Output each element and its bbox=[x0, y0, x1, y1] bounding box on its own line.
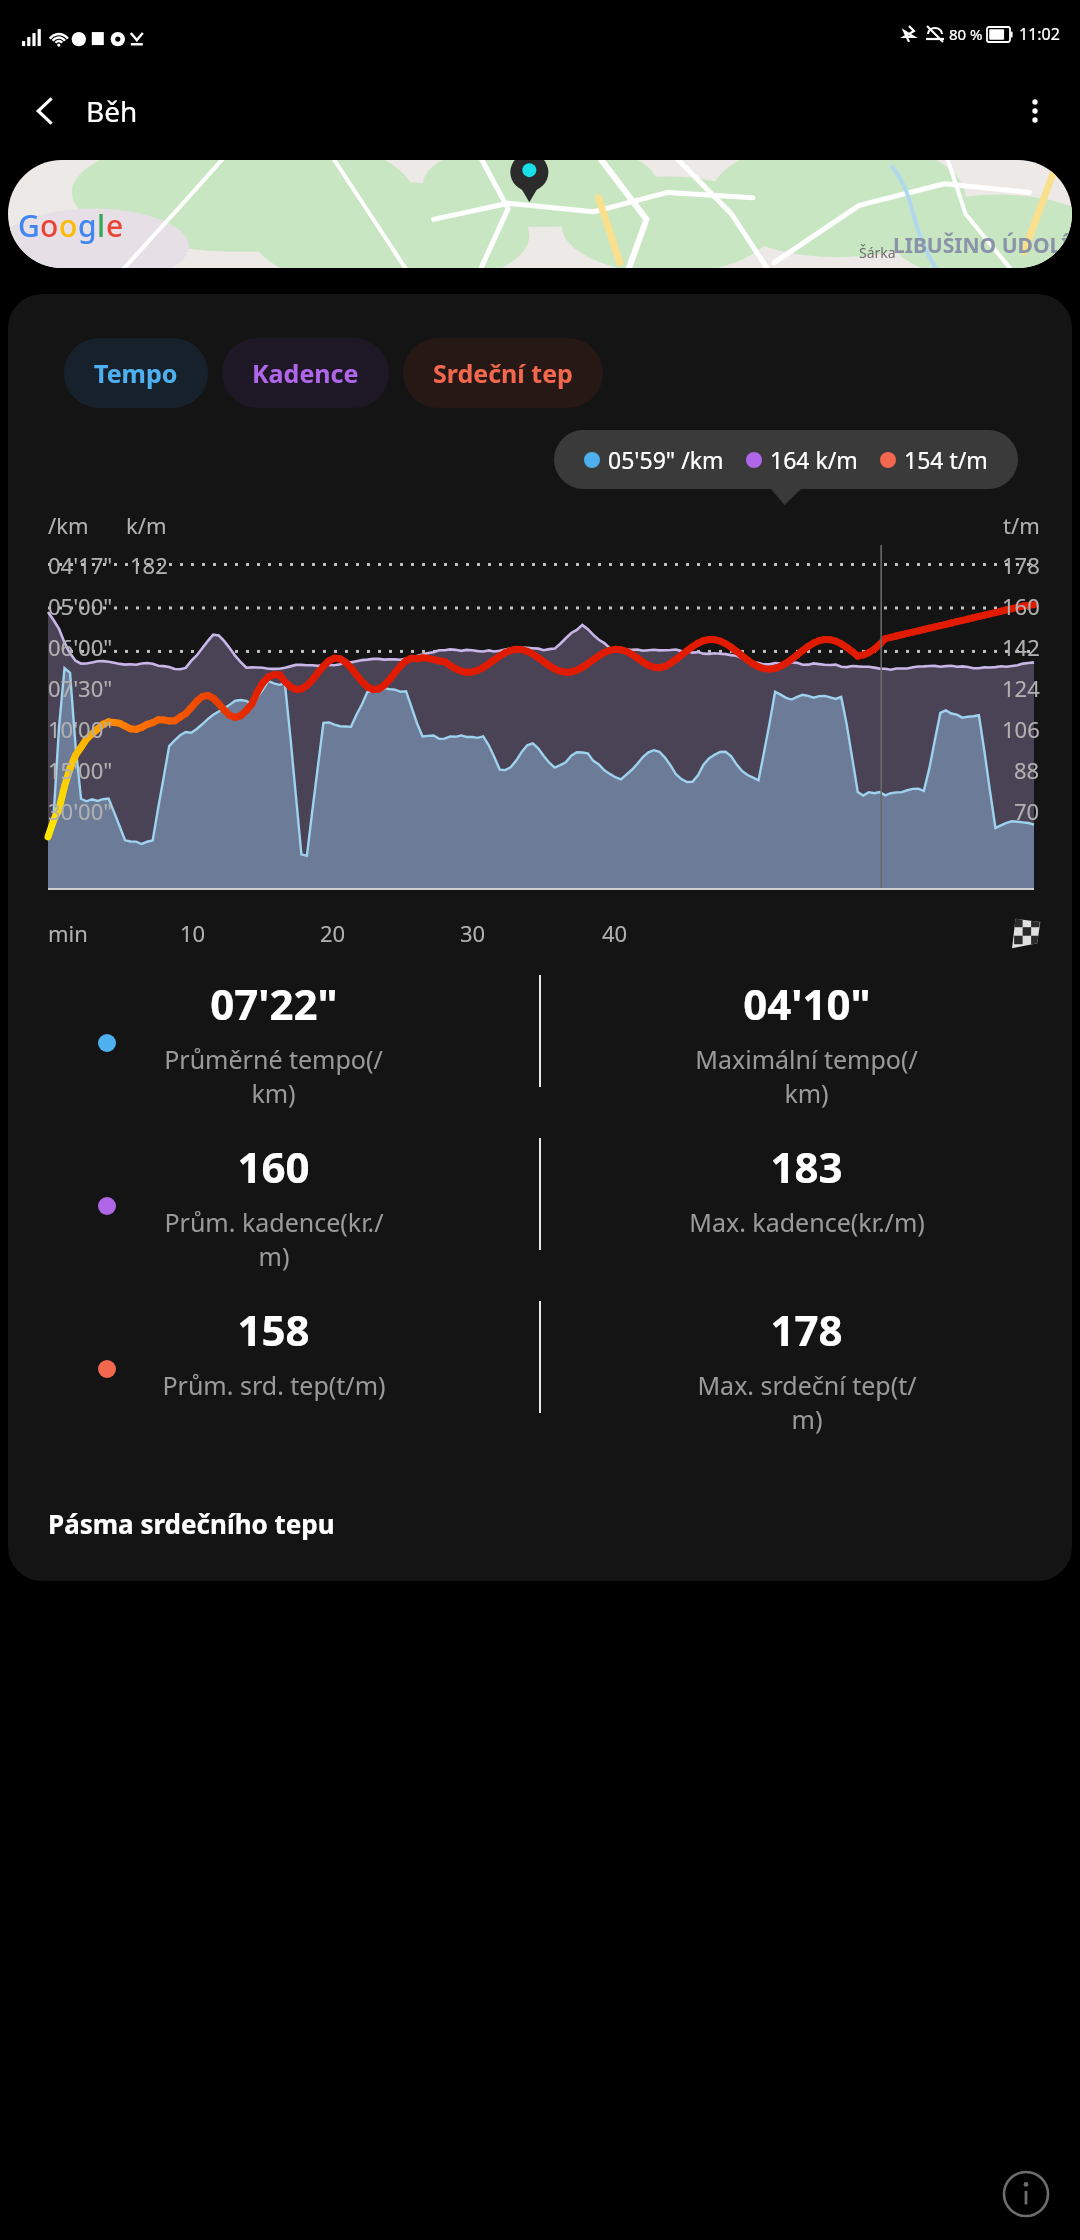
button[interactable]: 05'59" /km bbox=[554, 430, 1018, 489]
staticText: o bbox=[40, 205, 59, 246]
staticText: 70 bbox=[1014, 796, 1040, 826]
staticText: 80 % bbox=[949, 24, 983, 44]
staticText: 160 bbox=[1002, 591, 1040, 621]
staticText: k/m bbox=[126, 510, 167, 540]
staticText: 30 bbox=[460, 918, 486, 948]
button[interactable]: 160 bbox=[8, 1138, 1072, 1273]
button[interactable]: Srdeční tep bbox=[403, 338, 603, 408]
staticText: 178 bbox=[1002, 550, 1040, 580]
staticText: 106 bbox=[1002, 714, 1040, 744]
staticText: Srdeční tep bbox=[433, 356, 573, 390]
button[interactable]: Information bbox=[998, 2166, 1054, 2222]
staticText: l bbox=[97, 205, 106, 246]
staticText: 154 t/m bbox=[904, 444, 988, 475]
staticText: 15'00" bbox=[48, 755, 113, 785]
staticText: 05'59" /km bbox=[608, 444, 724, 475]
staticText: 160 bbox=[237, 1138, 310, 1195]
staticText: Kadence bbox=[252, 356, 359, 390]
staticText: /km bbox=[48, 510, 89, 540]
staticText: 30'00" bbox=[48, 796, 113, 826]
staticText: 10'00" bbox=[48, 714, 113, 744]
staticText: g bbox=[78, 205, 97, 246]
staticText: 07'30" bbox=[48, 673, 113, 703]
staticText: o bbox=[59, 205, 78, 246]
staticText: Běh bbox=[86, 92, 138, 130]
staticText: Prům. kadence(kr./ m) bbox=[164, 1205, 384, 1273]
staticText: t/m bbox=[1003, 510, 1040, 540]
staticText: Tempo bbox=[94, 356, 178, 390]
staticText: Pásma srdečního tepu bbox=[48, 1506, 335, 1541]
staticText: 183 bbox=[770, 1138, 843, 1195]
button[interactable]: 158 bbox=[8, 1301, 1072, 1436]
staticText: 07'22" bbox=[210, 975, 338, 1032]
staticText: G bbox=[18, 205, 40, 246]
button[interactable]: More options bbox=[1004, 80, 1066, 142]
button[interactable]: Back bbox=[14, 80, 76, 142]
staticText: 04'10" bbox=[743, 975, 871, 1032]
staticText: 05'00" bbox=[48, 591, 113, 621]
button[interactable]: G bbox=[8, 160, 1072, 268]
staticText: 06'00" bbox=[48, 632, 113, 662]
staticText: 40 bbox=[602, 918, 628, 948]
staticText: Prům. srd. tep(t/m) bbox=[162, 1368, 386, 1402]
button[interactable]: 07'22" bbox=[8, 975, 1072, 1110]
staticText: 164 k/m bbox=[770, 444, 858, 475]
staticText: Šárka bbox=[859, 243, 896, 262]
staticText: 178 bbox=[770, 1301, 843, 1358]
staticText: 88 bbox=[1014, 755, 1040, 785]
staticText: 11:02 bbox=[1019, 23, 1060, 45]
button[interactable]: Tempo bbox=[64, 338, 208, 408]
staticText: e bbox=[106, 205, 124, 246]
button[interactable]: Kadence bbox=[222, 338, 389, 408]
staticText: Max. srdeční tep(t/ m) bbox=[697, 1368, 917, 1436]
staticText: 158 bbox=[237, 1301, 310, 1358]
staticText: 182 bbox=[130, 550, 168, 580]
staticText: Max. kadence(kr./m) bbox=[689, 1205, 925, 1239]
staticText: 142 bbox=[1002, 632, 1040, 662]
staticText: 04'17" bbox=[48, 550, 113, 580]
staticText: 124 bbox=[1002, 673, 1040, 703]
staticText: Průměrné tempo(/ km) bbox=[164, 1042, 383, 1110]
staticText: LIBUŠINO ÚDOLÍ bbox=[893, 231, 1070, 260]
staticText: 10 bbox=[180, 918, 206, 948]
staticText: min bbox=[48, 918, 88, 948]
staticText: Maximální tempo(/ km) bbox=[695, 1042, 918, 1110]
staticText: 20 bbox=[320, 918, 346, 948]
